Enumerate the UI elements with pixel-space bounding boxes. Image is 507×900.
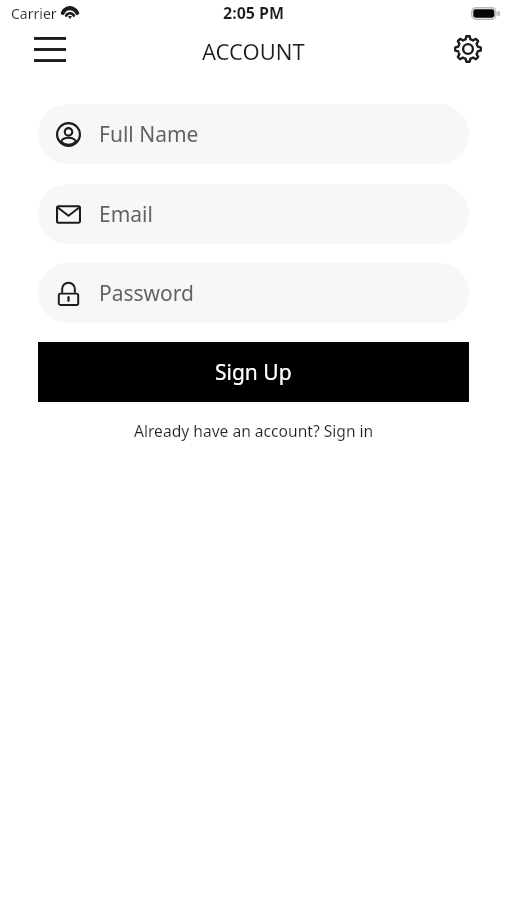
button[interactable]: Settings bbox=[449, 30, 487, 68]
staticText: Email bbox=[99, 200, 153, 229]
button[interactable]: Email bbox=[38, 184, 469, 244]
staticText: Password bbox=[99, 279, 194, 308]
button[interactable]: Full Name bbox=[38, 104, 469, 164]
staticText: Sign Up bbox=[215, 358, 292, 387]
staticText: 2:05 PM bbox=[223, 2, 285, 24]
button[interactable]: Password bbox=[38, 263, 469, 323]
button[interactable]: Menu bbox=[30, 29, 70, 69]
staticText: Carrier bbox=[11, 4, 57, 23]
staticText: ACCOUNT bbox=[202, 36, 305, 66]
button[interactable]: Already have an account? Sign in bbox=[134, 420, 374, 441]
button[interactable]: Sign Up bbox=[38, 342, 469, 402]
staticText: Full Name bbox=[99, 120, 199, 149]
